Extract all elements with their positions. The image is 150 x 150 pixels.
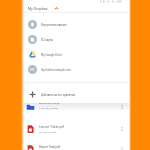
- staticText: Report final.pdf: [39, 145, 61, 149]
- button[interactable]: My Google Drive: [24, 47, 129, 62]
- button[interactable]: Documents.zip: [24, 96, 129, 118]
- staticText: ftp://wiho.example.com: [41, 68, 71, 72]
- button[interactable]: Concert Ticket.pdf: [24, 118, 129, 140]
- staticText: SD-карты: [41, 38, 54, 42]
- button[interactable]: SD-карты: [24, 32, 129, 47]
- button[interactable]: More options: [118, 103, 126, 111]
- button[interactable]: More options: [118, 125, 126, 133]
- staticText: 1.23 MB, 30 мар: [39, 106, 59, 109]
- staticText: Documents.zip: [39, 101, 60, 105]
- button[interactable]: My Dropbox: [24, 4, 129, 12]
- staticText: My Dropbox: [28, 6, 48, 11]
- button[interactable]: More options: [118, 145, 126, 150]
- button[interactable]: Добавить место хранения: [24, 88, 129, 101]
- button[interactable]: Report final.pdf: [24, 138, 129, 150]
- staticText: Concert Ticket.pdf: [39, 125, 64, 129]
- staticText: My Google Drive: [41, 53, 62, 57]
- button[interactable]: ftp://wiho.example.com: [24, 62, 129, 77]
- staticText: 2.6 MB, 30 апр: [39, 130, 57, 133]
- staticText: Внутренняя память: [41, 23, 67, 27]
- button[interactable]: Внутренняя память: [24, 17, 129, 32]
- staticText: Добавить место хранения: [41, 93, 76, 97]
